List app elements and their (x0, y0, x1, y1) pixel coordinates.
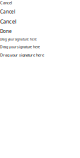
staticText: Done (0, 28, 12, 34)
staticText: Drag your signature here (0, 37, 37, 41)
staticText: Cancel (0, 0, 12, 5)
staticText: Cancel (0, 8, 15, 15)
staticText: Drag your signature here (0, 44, 40, 49)
staticText: Cancel (0, 18, 16, 25)
staticText: Drag your signature here (0, 52, 44, 57)
